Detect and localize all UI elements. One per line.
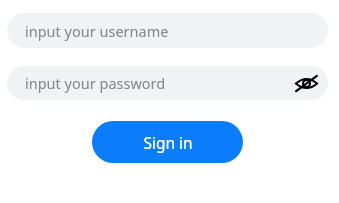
staticText: input your password [25,73,166,93]
staticText: input your username [25,21,169,41]
button[interactable]: Sign in [92,121,243,163]
button[interactable]: input your password [7,66,328,100]
button[interactable]: input your username [7,13,328,48]
staticText: Sign in [143,132,193,153]
button[interactable]: Show password [294,71,318,95]
